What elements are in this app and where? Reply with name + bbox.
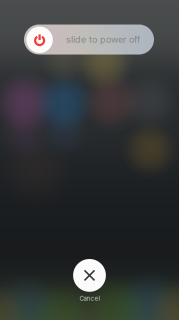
staticText: slide to power off — [66, 34, 140, 45]
button[interactable]: Cancel — [73, 259, 106, 302]
staticText: Cancel — [79, 295, 99, 302]
button[interactable]: slide to power off — [24, 24, 154, 54]
